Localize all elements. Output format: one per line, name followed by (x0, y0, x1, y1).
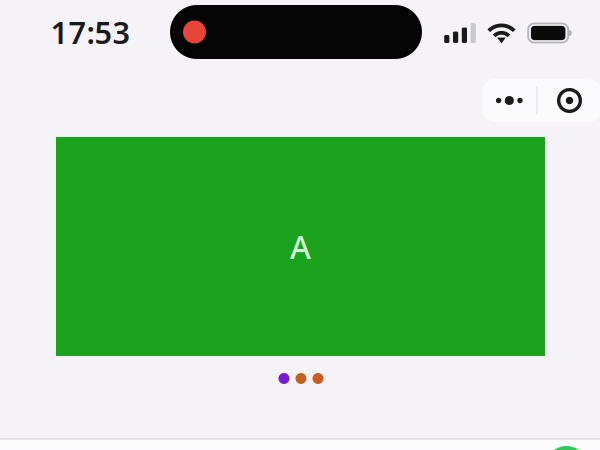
button[interactable]: Page 3 (312, 373, 323, 384)
staticText: 17:53 (50, 12, 130, 52)
button[interactable]: Page 2 (295, 373, 306, 384)
button[interactable]: More options (482, 79, 536, 122)
staticText: A (290, 225, 311, 268)
button[interactable]: Record (537, 79, 600, 122)
button[interactable]: Add (0, 438, 600, 450)
button[interactable]: Page 1 (278, 373, 289, 384)
button[interactable]: Slide A (56, 137, 545, 356)
